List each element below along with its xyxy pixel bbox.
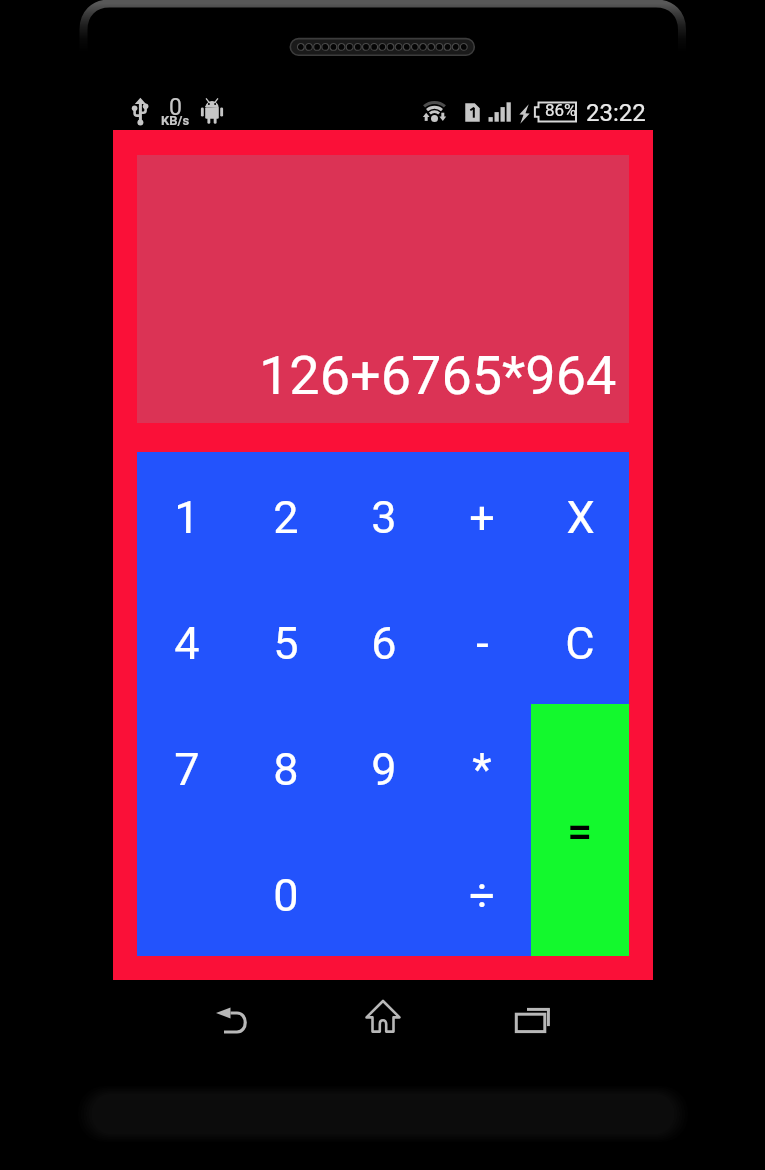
- button[interactable]: Home: [357, 994, 409, 1046]
- button[interactable]: 2: [236, 452, 335, 578]
- staticText: 2: [273, 491, 299, 544]
- button[interactable]: 4: [137, 578, 236, 704]
- staticText: +: [469, 491, 495, 544]
- button[interactable]: 9: [335, 704, 433, 830]
- button[interactable]: ÷: [433, 830, 531, 956]
- button[interactable]: 7: [137, 704, 236, 830]
- staticText: 4: [174, 617, 200, 670]
- staticText: KB/s: [161, 113, 190, 128]
- button[interactable]: 126+6765*964: [137, 155, 629, 423]
- button[interactable]: [531, 830, 629, 956]
- button[interactable]: 6: [335, 578, 433, 704]
- staticText: ÷: [469, 869, 495, 922]
- button[interactable]: Recent apps: [507, 994, 559, 1046]
- button[interactable]: *: [433, 704, 531, 830]
- staticText: 7: [174, 743, 200, 796]
- button[interactable]: 5: [236, 578, 335, 704]
- button[interactable]: 1: [137, 452, 236, 578]
- button[interactable]: +: [433, 452, 531, 578]
- button[interactable]: 0: [236, 830, 335, 956]
- staticText: 8: [273, 743, 299, 796]
- button[interactable]: X: [531, 452, 629, 578]
- staticText: 23:22: [586, 99, 646, 127]
- button[interactable]: Back: [207, 994, 259, 1046]
- staticText: X: [566, 491, 595, 544]
- button[interactable]: 8: [236, 704, 335, 830]
- button[interactable]: =: [531, 704, 629, 956]
- staticText: 5: [273, 617, 299, 670]
- staticText: 1: [174, 491, 200, 544]
- staticText: C: [565, 617, 595, 670]
- button[interactable]: -: [433, 578, 531, 704]
- staticText: 0: [169, 94, 182, 121]
- staticText: 6: [371, 617, 397, 670]
- staticText: -: [476, 617, 489, 670]
- staticText: 0: [273, 869, 299, 922]
- staticText: 126+6765*964: [259, 344, 617, 407]
- button[interactable]: 3: [335, 452, 433, 578]
- staticText: *: [472, 743, 492, 796]
- button[interactable]: [531, 704, 629, 830]
- staticText: 3: [371, 491, 397, 544]
- staticText: 9: [371, 743, 397, 796]
- staticText: =: [567, 805, 593, 858]
- staticText: 86%: [545, 100, 577, 120]
- button[interactable]: C: [531, 578, 629, 704]
